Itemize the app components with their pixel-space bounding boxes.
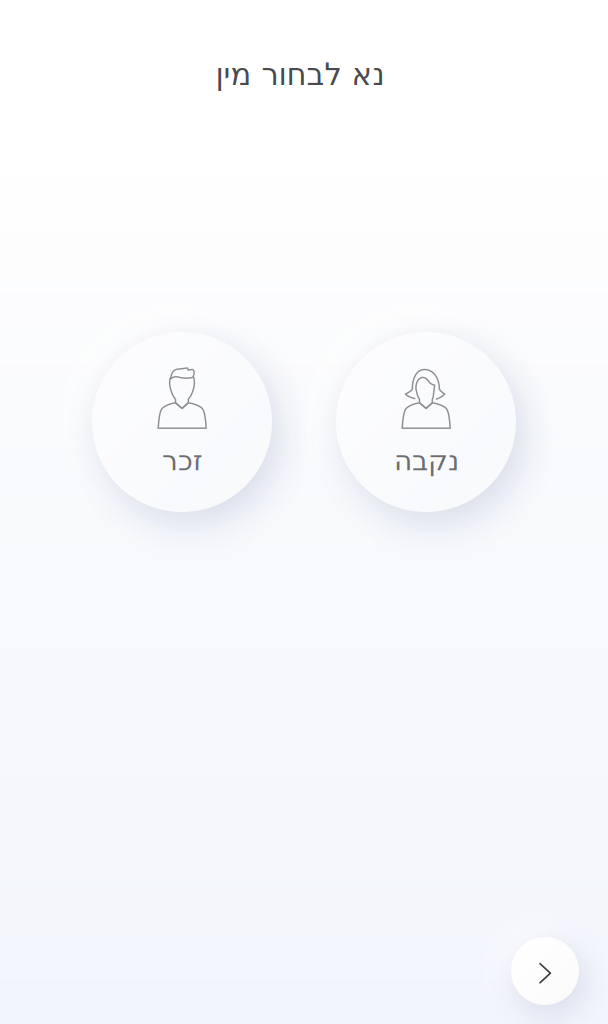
staticText: נא לבחור מין <box>215 57 384 92</box>
button[interactable]: זכר <box>82 322 282 522</box>
button[interactable]: Next <box>499 925 591 1017</box>
staticText: נקבה <box>393 445 458 476</box>
button[interactable]: נקבה <box>326 322 526 522</box>
staticText: זכר <box>161 445 202 476</box>
